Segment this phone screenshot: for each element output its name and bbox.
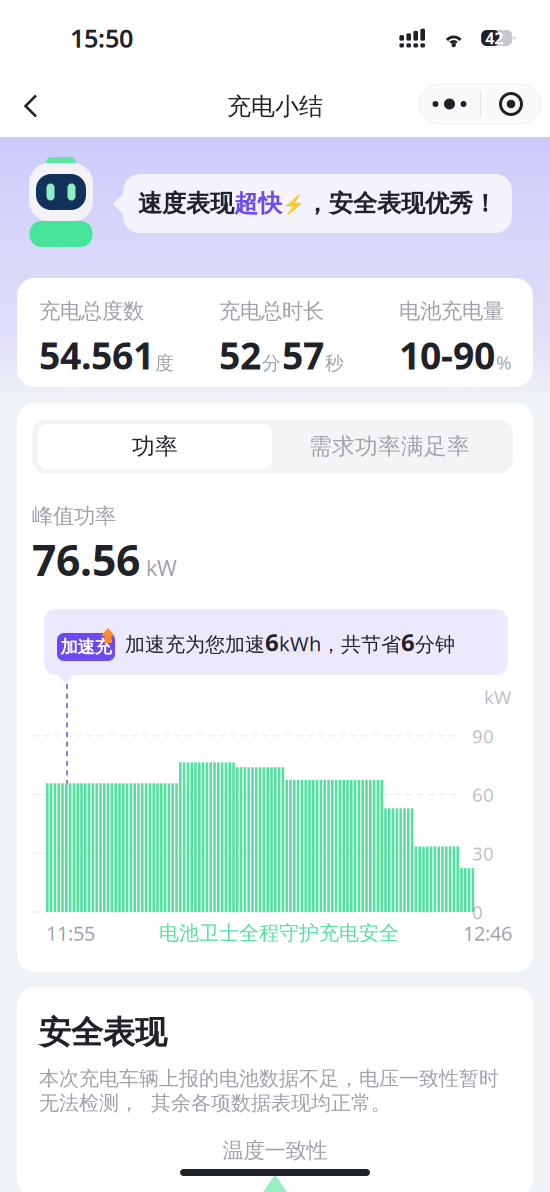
staticText: 本次充电车辆上报的电池数据不足，电压一致性暂时无法检测， 其余各项数据表现均正常…	[39, 1066, 499, 1115]
staticText: 电池卫士全程守护充电安全	[159, 921, 399, 945]
staticText: 54.561	[39, 330, 154, 380]
staticText: 超快	[234, 189, 282, 218]
button[interactable]: 需求功率满足率	[272, 424, 507, 469]
staticText: 76.56	[32, 531, 140, 588]
staticText: kW	[146, 553, 177, 582]
staticText: 安全表现	[39, 1013, 167, 1052]
staticText: 秒	[325, 352, 344, 375]
staticText: 加速充为您加速	[125, 632, 265, 657]
button[interactable]: Back	[10, 84, 52, 128]
staticText: 度	[155, 352, 174, 375]
staticText: 52	[219, 330, 261, 380]
staticText: 15:50	[70, 21, 133, 55]
staticText: ，安全表现优秀！	[305, 189, 497, 218]
staticText: kW	[484, 685, 511, 709]
staticText: 峰值功率	[32, 503, 116, 529]
staticText: 6	[401, 626, 415, 658]
staticText: 充电小结	[227, 92, 323, 121]
staticText: 充电总度数	[39, 298, 144, 324]
staticText: 分钟	[415, 632, 455, 657]
staticText: 30	[472, 841, 494, 866]
staticText: 12:46	[463, 920, 512, 946]
button[interactable]: Close mini program	[481, 84, 541, 124]
staticText: %	[496, 350, 512, 375]
staticText: 57	[282, 330, 324, 380]
staticText: 6	[265, 626, 279, 658]
staticText: 温度一致性	[222, 1137, 327, 1164]
staticText: 充电总时长	[219, 298, 324, 324]
staticText: 11:55	[46, 920, 95, 946]
staticText: 0	[472, 900, 483, 924]
staticText: 90	[472, 723, 494, 748]
staticText: 加速充	[60, 636, 111, 658]
staticText: ⚡	[282, 194, 305, 216]
staticText: 电池充电量	[399, 298, 504, 324]
button[interactable]: More	[419, 84, 480, 124]
staticText: 需求功率满足率	[309, 433, 470, 460]
staticText: 60	[472, 782, 494, 807]
staticText: kWh，共节省	[279, 630, 401, 657]
staticText: 分	[262, 352, 281, 375]
staticText: 10-90	[399, 330, 495, 380]
staticText: 速度表现	[138, 189, 234, 218]
staticText: 功率	[132, 433, 178, 460]
button[interactable]: 功率	[38, 424, 272, 469]
staticText: 42	[485, 27, 503, 49]
